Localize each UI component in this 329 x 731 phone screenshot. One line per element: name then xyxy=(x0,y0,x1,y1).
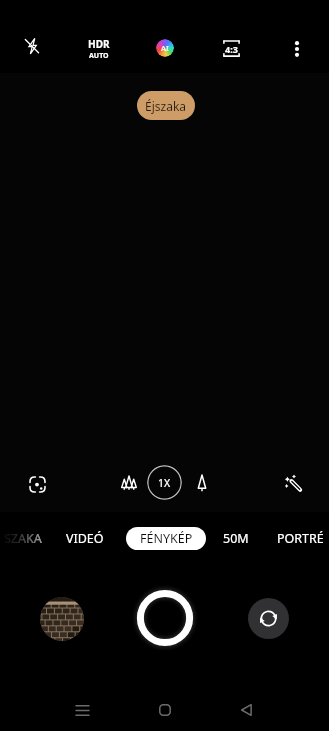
button[interactable]: 50M xyxy=(201,525,271,551)
button[interactable]: PORTRÉ xyxy=(265,525,329,551)
button[interactable]: Macro xyxy=(21,468,53,500)
staticText: 1X xyxy=(158,476,171,490)
button[interactable]: Éjszaka xyxy=(137,91,195,120)
button[interactable]: More options xyxy=(282,34,312,64)
button[interactable]: Switch camera xyxy=(248,598,289,639)
button[interactable]: Last photo xyxy=(40,597,84,641)
staticText: AUTO xyxy=(89,51,109,61)
button[interactable]: VIDEÓ xyxy=(50,525,120,551)
staticText: 50M xyxy=(223,530,249,547)
staticText: PORTRÉ xyxy=(277,530,324,547)
button[interactable]: Aspect ratio 4 by 3 xyxy=(216,33,246,63)
button[interactable]: HDR xyxy=(77,34,121,64)
button[interactable]: Recent apps xyxy=(64,692,100,728)
button[interactable]: Home xyxy=(147,692,183,728)
staticText: FÉNYKÉP xyxy=(140,530,193,547)
staticText: VIDEÓ xyxy=(66,530,104,547)
button[interactable]: Telephoto xyxy=(187,468,217,498)
button[interactable]: 1X xyxy=(147,465,182,500)
button[interactable]: SZAKA xyxy=(0,525,58,551)
staticText: SZAKA xyxy=(4,530,42,547)
button[interactable]: AI mode xyxy=(150,33,180,63)
button[interactable]: Filters xyxy=(278,468,308,498)
button[interactable]: Take photo xyxy=(127,580,203,656)
staticText: AI xyxy=(161,43,169,53)
button[interactable]: Ultra wide xyxy=(113,467,145,499)
button[interactable]: Back xyxy=(228,692,264,728)
staticText: 4:3 xyxy=(225,43,238,55)
staticText: HDR xyxy=(88,37,110,51)
staticText: Éjszaka xyxy=(145,98,187,114)
button[interactable]: Flash off xyxy=(17,31,47,61)
button[interactable]: FÉNYKÉP xyxy=(126,527,206,550)
